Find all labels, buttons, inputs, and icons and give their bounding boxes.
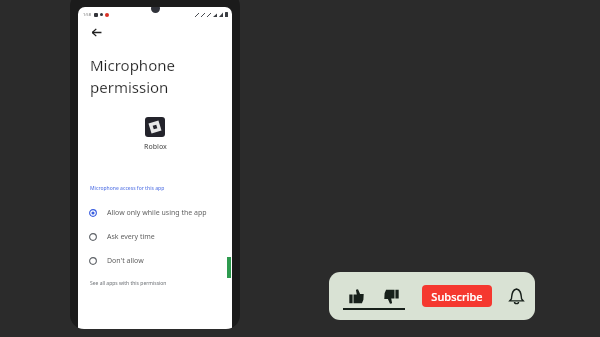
button[interactable]: Back <box>85 21 107 43</box>
staticText: Ask every time <box>107 232 155 242</box>
button[interactable]: Ask every time <box>78 227 232 247</box>
button[interactable]: Notifications <box>504 284 528 308</box>
staticText: Don't allow <box>107 256 144 266</box>
staticText: Allow only while using the app <box>107 208 207 218</box>
button[interactable]: Allow only while using the app <box>78 203 232 223</box>
staticText: 1:58 <box>83 12 91 17</box>
staticText: permission <box>90 77 169 97</box>
button[interactable]: Subscribe <box>422 285 492 307</box>
staticText: Roblox <box>144 142 167 152</box>
button[interactable]: Like <box>343 283 369 309</box>
staticText: See all apps with this permission <box>90 280 167 287</box>
staticText: Subscribe <box>431 289 483 304</box>
staticText: Microphone <box>90 55 175 75</box>
button[interactable]: Dislike <box>378 283 404 309</box>
staticText: Microphone access for this app <box>90 185 165 192</box>
button[interactable]: Don't allow <box>78 251 232 271</box>
